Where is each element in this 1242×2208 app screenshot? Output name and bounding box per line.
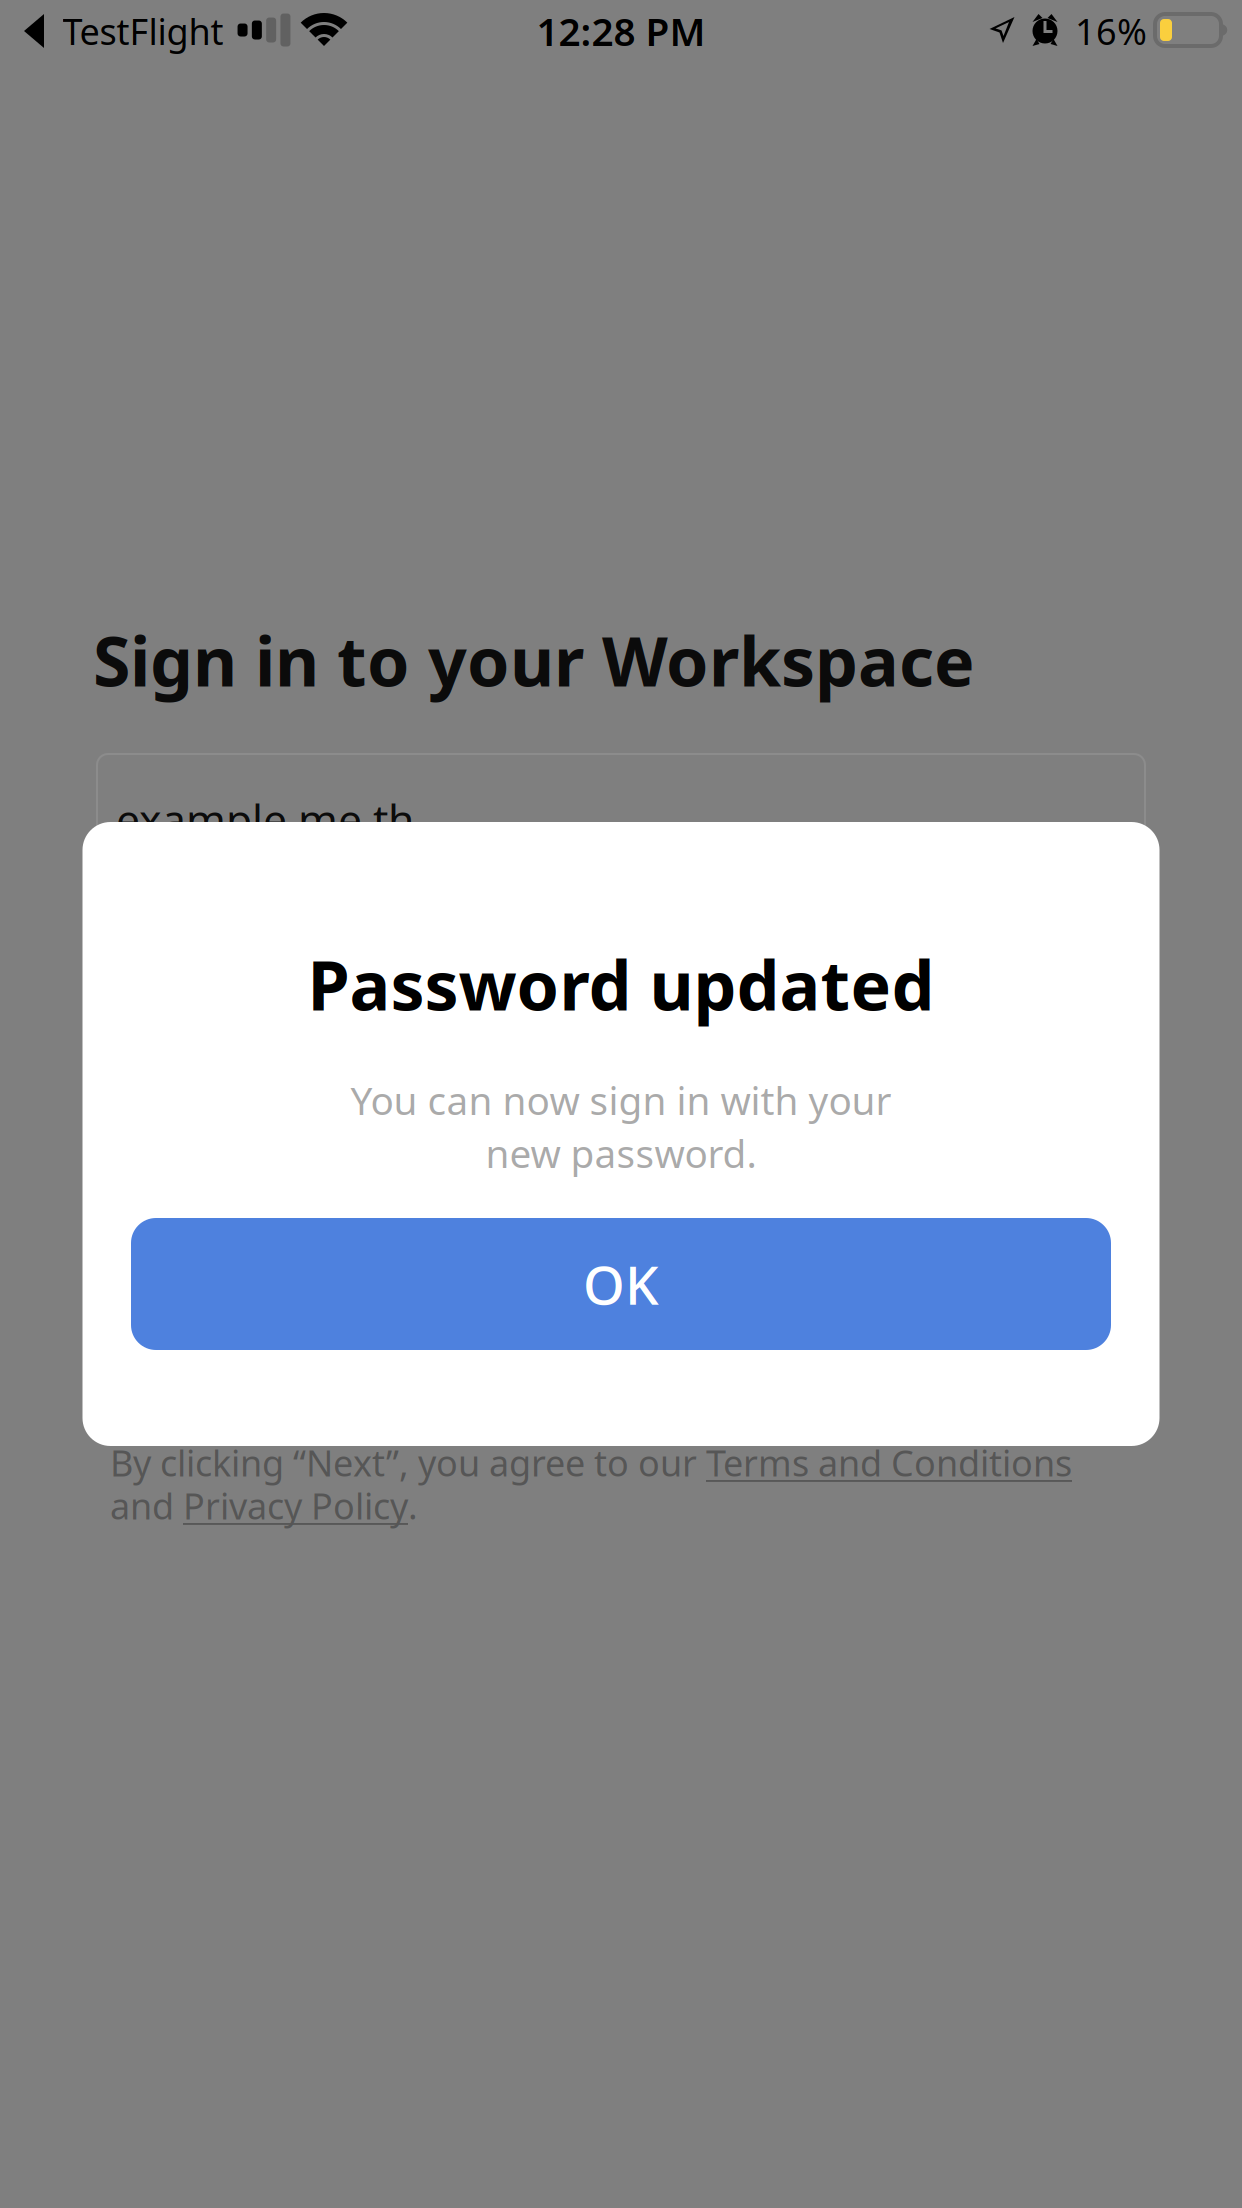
- staticText: .: [408, 1482, 418, 1529]
- button[interactable]: example.me.th: [97, 754, 1145, 884]
- staticText: You can now sign in with your: [350, 1074, 891, 1126]
- staticText: OK: [583, 1249, 659, 1319]
- button[interactable]: Privacy Policy: [183, 1482, 408, 1529]
- staticText: new password.: [485, 1127, 756, 1179]
- staticText: example.me.th: [116, 791, 414, 847]
- staticText: Password updated: [307, 939, 934, 1029]
- button[interactable]: OK: [131, 1218, 1111, 1350]
- staticText: By clicking “Next”, you agree to our: [110, 1439, 706, 1486]
- staticText: 12:28 PM: [536, 5, 705, 57]
- button[interactable]: Terms and Conditions: [706, 1439, 1072, 1486]
- staticText: TestFlight: [62, 7, 223, 55]
- staticText: 16%: [1075, 7, 1147, 55]
- staticText: Privacy Policy: [183, 1482, 408, 1529]
- staticText: and: [110, 1482, 183, 1529]
- staticText: Terms and Conditions: [706, 1439, 1072, 1486]
- staticText: Sign in to your Workspace: [93, 615, 975, 705]
